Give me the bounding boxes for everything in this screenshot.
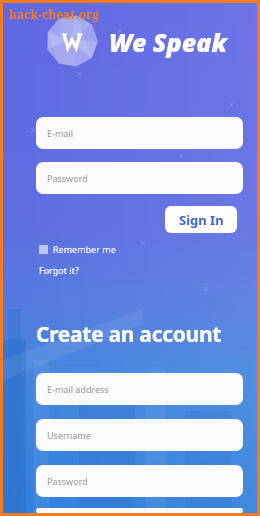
staticText: Password bbox=[47, 475, 88, 487]
button[interactable]: Sign In bbox=[165, 206, 237, 233]
staticText: Forgot it? bbox=[39, 264, 79, 276]
button[interactable]: Forgot it? bbox=[39, 264, 79, 276]
button[interactable]: Password bbox=[36, 465, 243, 497]
staticText: E-mail address bbox=[47, 383, 109, 395]
button[interactable]: Remember me bbox=[39, 243, 116, 255]
staticText: E-mail bbox=[47, 127, 74, 139]
staticText: hack-cheat.org bbox=[9, 6, 100, 22]
staticText: Username bbox=[47, 429, 91, 441]
staticText: Password bbox=[47, 172, 88, 184]
button[interactable]: E-mail address bbox=[36, 373, 243, 405]
staticText: Sign In bbox=[179, 211, 224, 229]
button[interactable] bbox=[36, 508, 243, 513]
staticText: We Speak bbox=[109, 25, 227, 59]
staticText: Create an account bbox=[36, 320, 257, 349]
button[interactable]: Password bbox=[36, 162, 243, 194]
button[interactable]: Username bbox=[36, 419, 243, 451]
button[interactable]: E-mail bbox=[36, 117, 243, 149]
staticText: Remember me bbox=[53, 243, 116, 255]
